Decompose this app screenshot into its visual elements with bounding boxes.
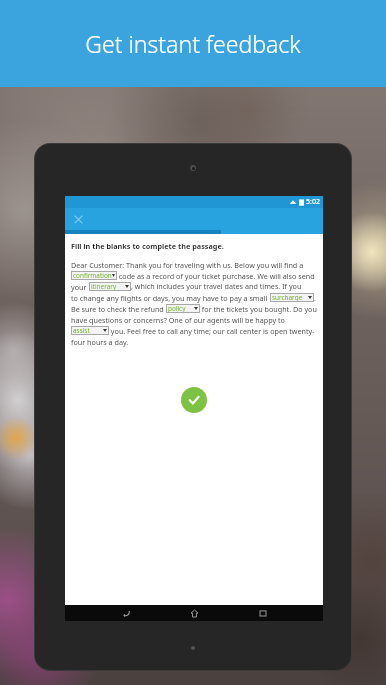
staticText: surcharge xyxy=(272,293,303,302)
staticText: itinerary xyxy=(91,282,117,291)
staticText: , which includes your travel dates and t… xyxy=(131,281,317,292)
staticText: assist xyxy=(73,326,90,335)
button[interactable]: policy xyxy=(166,304,200,313)
staticText: code as a record of your ticket purchase… xyxy=(117,271,315,281)
staticText: for the tickets you bought. Do you xyxy=(200,304,317,314)
button[interactable]: Home xyxy=(186,605,202,621)
button[interactable]: itinerary xyxy=(89,282,131,291)
button[interactable]: Check answers xyxy=(181,387,207,413)
staticText: four hours a day. xyxy=(71,337,129,347)
staticText: Dear Customer: Thank you for traveling w… xyxy=(71,260,304,270)
staticText: confirmation xyxy=(73,271,112,280)
staticText: policy xyxy=(168,304,186,313)
staticText: your xyxy=(71,282,89,292)
staticText: . xyxy=(314,293,316,303)
staticText: to change any flights or days, you may h… xyxy=(71,293,270,303)
staticText: have questions or concerns? One of our a… xyxy=(71,315,285,325)
staticText: Be sure to check the refund xyxy=(71,304,166,314)
staticText: you. Feel free to call any time; our cal… xyxy=(109,326,315,336)
staticText: Get instant feedback xyxy=(85,28,301,59)
button[interactable]: Close xyxy=(71,212,85,226)
staticText: 5:02 xyxy=(306,197,320,207)
button[interactable]: confirmation xyxy=(71,271,117,280)
staticText: Fill in the blanks to complete the passa… xyxy=(71,241,224,251)
button[interactable]: assist xyxy=(71,326,109,335)
button[interactable]: Back xyxy=(118,605,134,621)
button[interactable]: surcharge xyxy=(270,293,314,302)
button[interactable]: Recent apps xyxy=(255,605,271,621)
